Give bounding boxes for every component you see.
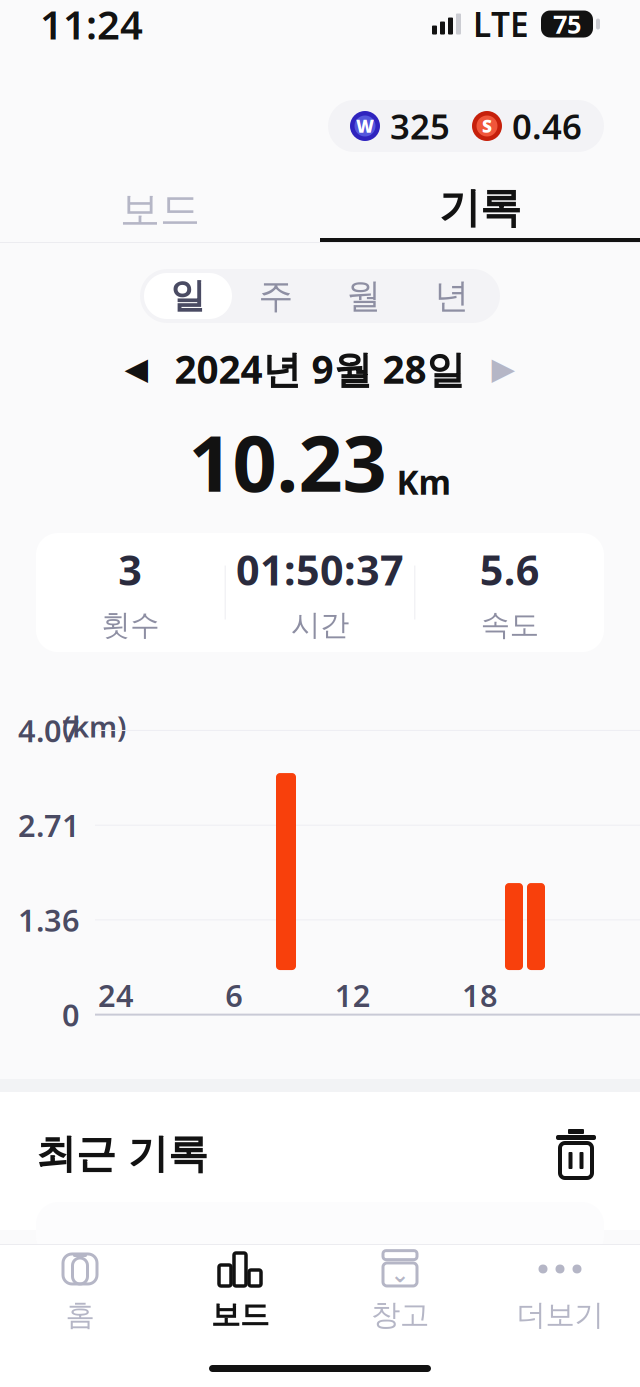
staticText: 10.23 xyxy=(188,410,386,513)
staticText: (km) xyxy=(62,707,127,746)
staticText: W xyxy=(356,114,374,137)
staticText: ◀ xyxy=(124,351,148,386)
staticText: 24 xyxy=(98,975,134,1015)
button[interactable]: 보드 xyxy=(160,1245,320,1339)
staticText: 년 xyxy=(434,275,469,317)
staticText: S xyxy=(482,114,492,137)
staticText: 일 xyxy=(170,275,205,317)
staticText: 325 xyxy=(390,103,450,149)
staticText: 5.6 xyxy=(480,542,540,597)
staticText: ⌄ xyxy=(390,1262,409,1287)
staticText: 0.46 xyxy=(512,103,582,149)
button[interactable]: 년 xyxy=(408,273,496,319)
button[interactable]: 이전 날짜 xyxy=(110,345,162,393)
staticText: 75 xyxy=(553,7,581,41)
button[interactable]: ⌄ xyxy=(320,1245,480,1339)
button[interactable]: 월 xyxy=(320,273,408,319)
button[interactable]: 일 xyxy=(144,273,232,319)
staticText: 12 xyxy=(335,975,371,1015)
button[interactable]: 더보기 xyxy=(480,1245,640,1339)
button[interactable]: 홈 xyxy=(0,1245,160,1339)
staticText: 11:24 xyxy=(40,0,143,50)
staticText: 더보기 xyxy=(516,1297,603,1333)
staticText: 2024년 9월 28일 xyxy=(174,343,465,394)
staticText: 횟수 xyxy=(101,607,159,643)
staticText: 2.71 xyxy=(18,805,80,845)
staticText: 속도 xyxy=(481,607,539,643)
staticText: 1.36 xyxy=(18,899,80,940)
staticText: LTE xyxy=(473,2,529,46)
staticText: 창고 xyxy=(371,1297,429,1333)
staticText: 최근 기록 xyxy=(36,1129,208,1178)
staticText: 홈 xyxy=(65,1297,94,1333)
button[interactable]: W xyxy=(328,100,604,152)
button[interactable]: 다음 날짜 xyxy=(477,345,529,393)
staticText: 보드 xyxy=(120,185,200,234)
staticText: 6 xyxy=(225,975,243,1015)
staticText: 3 xyxy=(118,542,142,597)
staticText: 18 xyxy=(462,975,498,1015)
staticText: 주 xyxy=(258,275,293,317)
staticText: 0 xyxy=(62,994,80,1035)
staticText: 기록 xyxy=(439,183,521,233)
staticText: 월 xyxy=(346,275,381,317)
button[interactable]: 기록 xyxy=(320,178,640,242)
staticText: ▶ xyxy=(491,351,515,386)
staticText: 01:50:37 xyxy=(236,542,404,597)
staticText: 4.07 xyxy=(18,710,80,751)
button[interactable]: 주 xyxy=(232,273,320,319)
button[interactable]: 기록 삭제 xyxy=(548,1126,604,1182)
button[interactable]: 보드 xyxy=(0,178,320,242)
staticText: 보드 xyxy=(211,1297,269,1333)
staticText: Km xyxy=(396,460,451,504)
staticText: 시간 xyxy=(291,607,349,643)
